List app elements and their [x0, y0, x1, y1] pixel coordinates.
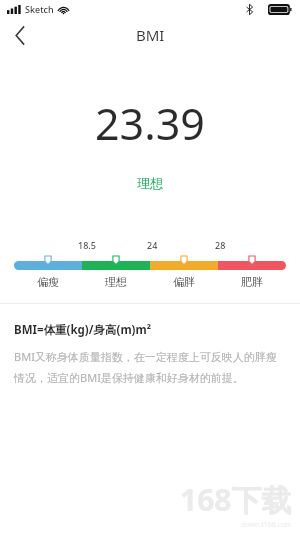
staticText: 24 — [147, 239, 158, 251]
staticText: 18.5 — [78, 239, 96, 251]
staticText: 理想 — [137, 175, 163, 191]
button[interactable]: Back — [0, 18, 40, 52]
staticText: 28 — [215, 239, 226, 251]
staticText: BMI又称身体质量指数，在一定程度上可反映人的胖瘦情况，适宜的BMI是保持健康和… — [14, 349, 286, 385]
staticText: 肥胖 — [241, 275, 263, 289]
staticText: down.t168.com — [241, 520, 292, 530]
staticText: 理想 — [105, 275, 127, 289]
staticText: BMI=体重(kg)/身高(m)m² — [14, 322, 152, 338]
staticText: 23.39 — [95, 94, 205, 153]
staticText: 偏胖 — [173, 275, 195, 289]
staticText: BMI — [136, 25, 165, 45]
staticText: Sketch — [25, 3, 54, 15]
staticText: 偏瘦 — [37, 275, 59, 289]
staticText: 168下载 — [180, 479, 292, 520]
